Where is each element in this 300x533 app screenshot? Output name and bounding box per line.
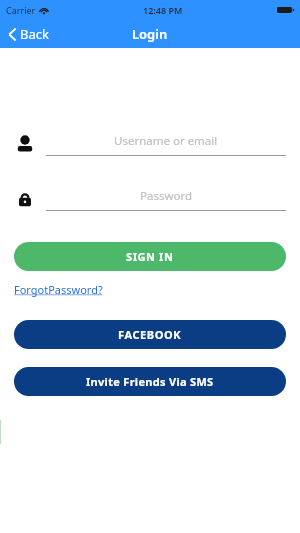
staticText: ForgotPassword? xyxy=(14,282,103,297)
button[interactable]: Invite Friends Via SMS xyxy=(14,367,286,396)
button[interactable]: SIGN IN xyxy=(14,242,286,271)
staticText: Back xyxy=(20,25,49,43)
button[interactable]: Back xyxy=(0,22,57,46)
staticText: Carrier xyxy=(6,4,36,16)
staticText: 12:48 PM xyxy=(143,4,183,16)
staticText: Password xyxy=(140,188,193,204)
other: Wi-Fi xyxy=(39,6,49,14)
staticText: Username or email xyxy=(114,133,218,149)
staticText: Login xyxy=(132,25,168,43)
staticText: Invite Friends Via SMS xyxy=(86,374,214,389)
staticText: FACEBOOK xyxy=(118,327,182,342)
button[interactable]: FACEBOOK xyxy=(14,320,286,349)
staticText: SIGN IN xyxy=(126,249,174,264)
button[interactable]: Username field xyxy=(46,126,286,162)
button[interactable]: ForgotPassword? xyxy=(14,280,103,299)
button[interactable]: Password field xyxy=(46,181,286,217)
other: Battery xyxy=(277,6,294,14)
